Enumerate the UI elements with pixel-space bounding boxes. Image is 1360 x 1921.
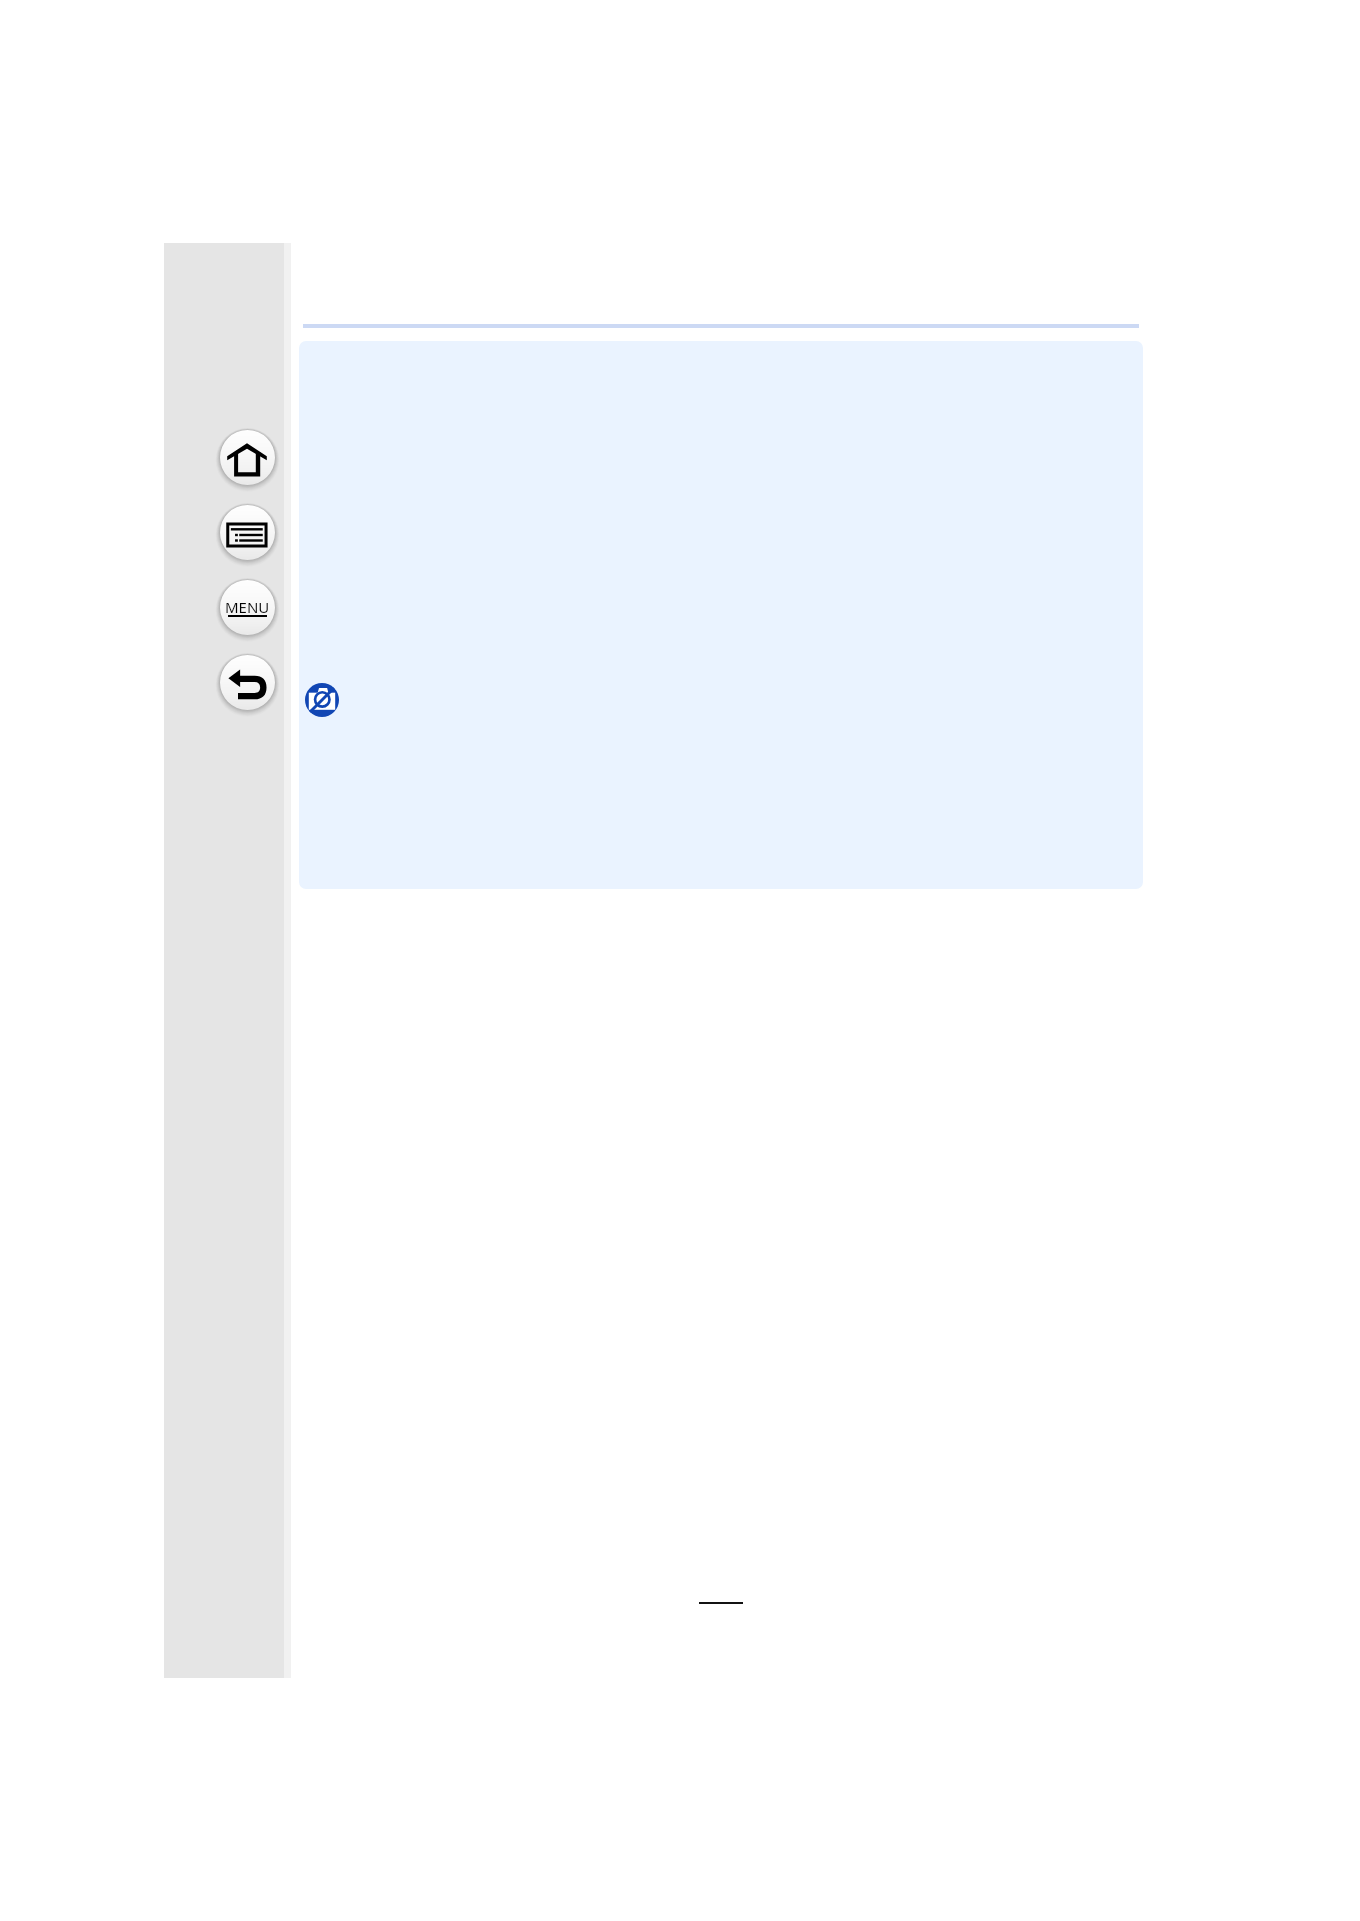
- button[interactable]: Recording not available: [305, 683, 339, 717]
- button[interactable]: Back: [214, 649, 281, 716]
- staticText: MENU: [225, 597, 270, 617]
- button[interactable]: MENU: [214, 574, 281, 641]
- button[interactable]: Contents: [214, 499, 281, 566]
- button[interactable]: Home: [214, 424, 281, 491]
